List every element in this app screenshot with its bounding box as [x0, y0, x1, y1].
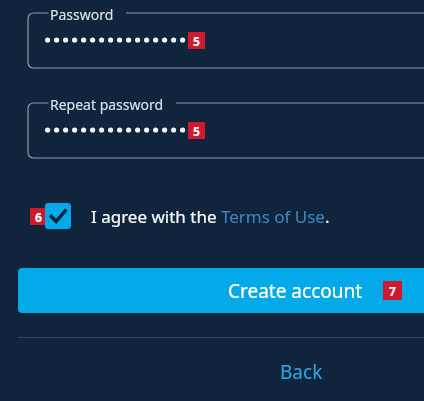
staticText: 5 — [193, 33, 200, 49]
staticText: I agree with the Terms of Use. — [91, 205, 330, 228]
button[interactable]: Create account — [18, 268, 424, 313]
button[interactable]: Repeat password — [28, 103, 424, 158]
staticText: Back — [280, 359, 323, 385]
staticText: Repeat password — [50, 95, 164, 114]
button[interactable]: 6 — [30, 198, 410, 234]
staticText: Password — [50, 5, 114, 24]
staticText: 7 — [389, 283, 396, 299]
button[interactable]: Password — [28, 13, 424, 68]
staticText: Create account — [228, 278, 363, 304]
other: I agree checkbox — [45, 203, 71, 229]
button[interactable]: Back — [266, 355, 336, 389]
staticText: 6 — [35, 209, 42, 225]
staticText: 5 — [193, 123, 200, 139]
